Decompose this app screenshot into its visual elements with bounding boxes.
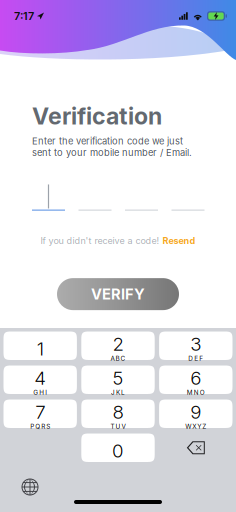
staticText: 0 <box>112 439 124 462</box>
staticText: 9 <box>190 401 201 423</box>
button[interactable]: 3 <box>159 331 232 360</box>
button[interactable]: 2 <box>81 331 155 360</box>
button[interactable]: VERIFY <box>57 278 179 310</box>
button[interactable]: 6 <box>159 365 232 394</box>
staticText: 7:17 <box>14 9 34 23</box>
staticText: D E F <box>188 355 203 362</box>
staticText: sent to your mobile number / Email. <box>32 147 192 158</box>
staticText: M N O <box>187 389 205 396</box>
staticText: If you didn't receive a code! <box>40 235 162 246</box>
button[interactable]: 1 <box>3 331 77 360</box>
staticText: P Q R S <box>30 423 50 430</box>
staticText: 6 <box>190 367 201 389</box>
staticText: 1 <box>37 337 44 360</box>
staticText: Enter the verification code we just <box>32 136 183 147</box>
staticText: Resend <box>162 235 195 246</box>
staticText: 3 <box>190 333 201 355</box>
button[interactable]: Resend <box>162 235 195 246</box>
staticText: A B C <box>110 355 125 362</box>
staticText: Verification <box>32 102 162 130</box>
staticText: T U V <box>110 423 125 430</box>
button[interactable]: Change keyboard <box>14 474 46 500</box>
staticText: G H I <box>33 389 47 396</box>
staticText: 7 <box>35 401 45 423</box>
staticText: 2 <box>112 333 123 355</box>
staticText: 8 <box>112 401 123 423</box>
button[interactable]: 0 <box>81 433 155 462</box>
staticText: W X Y Z <box>185 423 206 430</box>
staticText: VERIFY <box>91 285 145 303</box>
button[interactable]: 4 <box>3 365 77 394</box>
button[interactable]: 9 <box>159 399 232 428</box>
staticText: 5 <box>112 367 123 389</box>
staticText: 4 <box>34 367 46 389</box>
button[interactable]: 7 <box>3 399 77 428</box>
button[interactable]: 5 <box>81 365 155 394</box>
staticText: J K L <box>111 389 125 396</box>
button[interactable]: 8 <box>81 399 155 428</box>
button[interactable]: Delete <box>159 433 232 462</box>
